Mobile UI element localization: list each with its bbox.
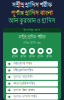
staticText: সহীহ হাদিস শরীফ [12, 2, 52, 9]
staticText: হাদিস [12, 55, 18, 59]
staticText: হাদিস [46, 55, 52, 59]
staticText: সুনানে ইবনে মাজাহ [13, 88, 34, 92]
staticText: সহীহ মুসলিম শরীফ [13, 69, 33, 72]
button[interactable]: সুনানে ইবনে মাজাহ [6, 87, 58, 93]
staticText: জামে তিরমিজি শরীফ [13, 82, 35, 85]
button[interactable]: Category [37, 48, 44, 59]
staticText: সহীহ বুখারী শরীফ [13, 62, 32, 66]
button[interactable]: সহীহ মুসলিম শরীফ [6, 68, 58, 73]
button[interactable]: জামে তিরমিজি শরীফ [6, 81, 58, 86]
button[interactable]: সুনানে নাসাঈ শরীফ [6, 94, 58, 100]
button[interactable]: সুনানে আবু দাউদ [6, 74, 58, 80]
button[interactable]: সহীহ বুখারী শরীফ [6, 61, 58, 67]
staticText: হাদিস [38, 55, 44, 59]
staticText: সুনানে নাসাঈ শরীফ [13, 95, 37, 99]
staticText: সহীহ হাদিস শরীফ [18, 34, 45, 40]
staticText: সুনানে আবু দাউদ [13, 75, 32, 79]
button[interactable]: Category [29, 48, 35, 59]
button[interactable]: Category [20, 48, 26, 59]
staticText: হাদিস [29, 55, 35, 59]
staticText: পবিত্র হাদিস গ্রন্থ [23, 41, 41, 45]
staticText: পূর্ণাঙ্গ হাদিস বাংলা [11, 10, 53, 17]
staticText: ইসলামিক অ্যাপ [23, 28, 40, 32]
button[interactable]: Category [12, 48, 18, 59]
staticText: আল কুরআন ও হাদিস [8, 18, 55, 25]
staticText: হাদিস [20, 55, 26, 59]
button[interactable]: Category [46, 48, 52, 59]
